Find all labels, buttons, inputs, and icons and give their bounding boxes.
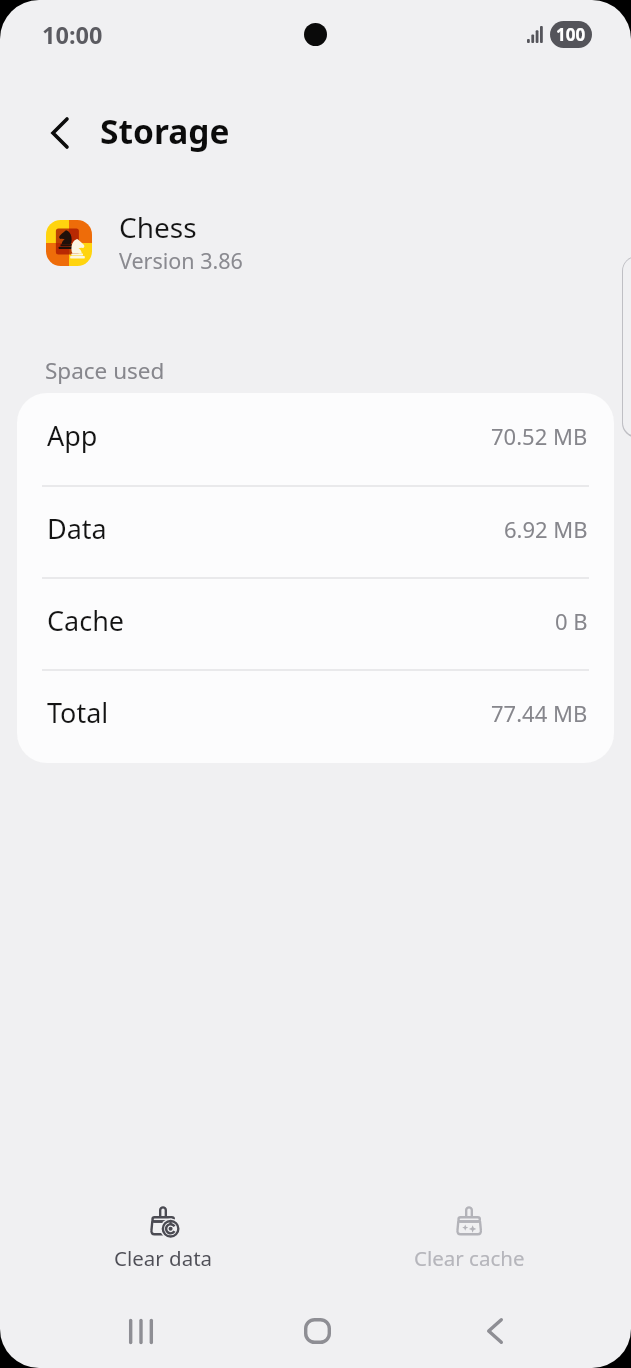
button[interactable]: Total	[17, 671, 614, 763]
staticText: 6.92 MB	[504, 514, 588, 544]
button[interactable]: Recent apps	[91, 1296, 191, 1366]
staticText: Chess	[119, 208, 197, 246]
staticText: 10:00	[42, 19, 103, 51]
button[interactable]: Back	[38, 111, 82, 155]
staticText: 0 B	[555, 606, 588, 636]
button[interactable]: Clear data	[53, 1190, 273, 1280]
button[interactable]: Back	[445, 1296, 545, 1366]
staticText: 70.52 MB	[491, 421, 588, 451]
staticText: Data	[47, 510, 107, 547]
button[interactable]: App	[17, 393, 614, 487]
staticText: Total	[47, 694, 109, 731]
staticText: Version 3.86	[119, 246, 243, 275]
staticText: Cache	[47, 602, 125, 639]
staticText: 77.44 MB	[491, 698, 588, 728]
button[interactable]: Clear cache	[359, 1190, 579, 1280]
button[interactable]: Data	[17, 487, 614, 579]
staticText: Clear cache	[414, 1244, 525, 1272]
staticText: Storage	[100, 108, 230, 154]
staticText: Space used	[45, 355, 165, 386]
staticText: App	[47, 417, 98, 454]
staticText: 100	[556, 23, 586, 46]
staticText: Clear data	[114, 1244, 213, 1272]
button[interactable]: Cache	[17, 579, 614, 671]
button[interactable]: Home	[267, 1296, 367, 1366]
